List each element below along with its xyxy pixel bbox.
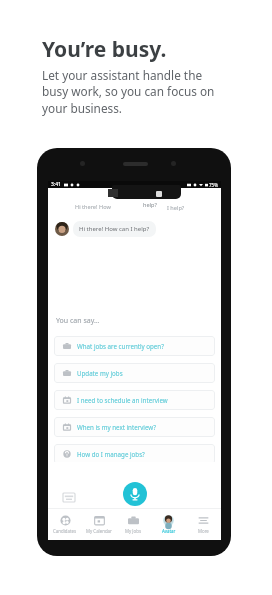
button[interactable]: What jobs are currently open? [54,336,215,356]
staticText: My Jobs [125,528,142,534]
staticText: I need to schedule an interview [77,396,168,404]
button[interactable]: I need to schedule an interview [54,390,215,410]
staticText: Avatar [162,528,176,534]
button[interactable]: Voice input [123,482,147,506]
staticText: Let your assistant handle the busy work,… [42,67,215,117]
button[interactable]: My Calendar [82,515,116,534]
button[interactable]: Update my jobs [54,363,215,383]
staticText: You can say… [56,316,100,326]
staticText: My Calendar [86,528,112,534]
button[interactable]: Candidates [48,515,82,534]
button[interactable]: When is my next interview? [54,417,215,437]
staticText: 3:41 [51,181,61,188]
staticText: How do I manage jobs? [77,450,145,458]
button[interactable]: My Jobs [116,515,151,534]
staticText: Update my jobs [77,369,123,377]
staticText: help? [143,201,157,209]
staticText: More [198,528,209,534]
staticText: 75% [209,182,218,188]
staticText: Hi there! How [75,203,111,211]
staticText: You’re busy. [42,35,167,64]
button[interactable]: How do I manage jobs? [54,444,215,464]
staticText: Candidates [53,528,77,534]
staticText: I help? [167,204,185,212]
button[interactable]: Keyboard [63,493,75,502]
staticText: When is my next interview? [77,423,157,431]
staticText: Hi there! How can I help? [79,225,150,233]
button[interactable]: More [186,515,221,534]
button[interactable]: Avatar [151,515,186,534]
staticText: What jobs are currently open? [77,342,164,350]
